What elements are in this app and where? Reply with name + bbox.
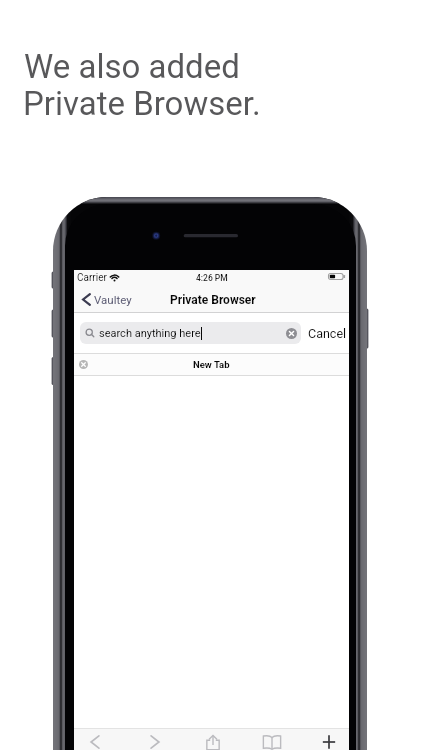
button[interactable]: Vaultey	[82, 293, 132, 306]
other: Close tab	[79, 360, 88, 369]
staticText: 4:26 PM	[196, 273, 228, 283]
button[interactable]: Bookmarks	[258, 734, 286, 749]
staticText: Private Browser	[170, 293, 256, 307]
button[interactable]: New tab	[315, 734, 343, 749]
staticText: Private Browser.	[23, 84, 261, 123]
button[interactable]: Close tab	[74, 353, 349, 376]
button[interactable]: Back	[81, 734, 109, 749]
staticText: We also added	[24, 47, 240, 86]
button[interactable]: Cancel	[308, 326, 347, 341]
staticText: New Tab	[193, 359, 230, 370]
staticText: Vaultey	[94, 293, 132, 306]
staticText: search anything here	[99, 327, 201, 340]
staticText: Carrier	[77, 272, 107, 284]
button[interactable]: Clear	[286, 328, 297, 339]
button[interactable]: Forward	[141, 734, 169, 749]
button[interactable]: Share	[199, 734, 227, 749]
button[interactable]: search anything here	[80, 322, 301, 344]
